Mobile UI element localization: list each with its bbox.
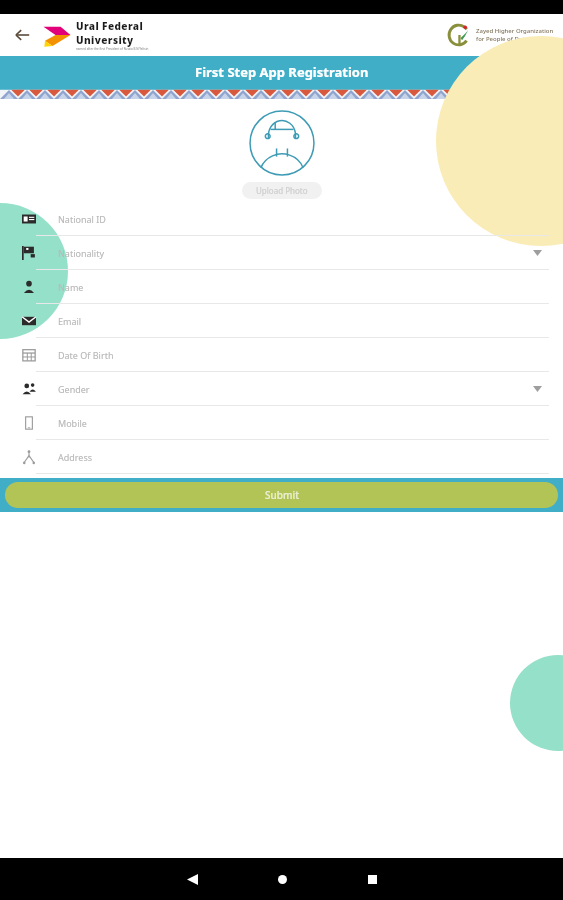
staticText: Ural Federal [76, 19, 144, 33]
staticText: Zayed Higher Organization [476, 27, 554, 35]
button[interactable]: Address [0, 440, 563, 474]
button[interactable]: Back [5, 18, 39, 52]
staticText: Nationality [58, 247, 104, 259]
button[interactable]: Nationality [0, 236, 563, 270]
staticText: Gender [58, 383, 90, 395]
staticText: First Step App Registration [195, 63, 369, 81]
staticText: Mobile [58, 417, 87, 429]
staticText: for People of Determination [476, 35, 557, 43]
staticText: Email [58, 315, 82, 327]
staticText: Submit [265, 488, 299, 502]
button[interactable]: Gender [0, 372, 563, 406]
button[interactable]: Back [169, 858, 215, 900]
button[interactable]: Upload Photo [242, 182, 322, 199]
staticText: University [76, 33, 134, 47]
staticText: Date Of Birth [58, 349, 114, 361]
button[interactable]: Email [0, 304, 563, 338]
button[interactable]: National ID [0, 202, 563, 236]
button[interactable]: Name [0, 270, 563, 304]
button[interactable]: Submit [5, 482, 558, 508]
staticText: National ID [58, 213, 106, 225]
button[interactable]: Profile photo [248, 109, 316, 177]
button[interactable]: Date Of Birth [0, 338, 563, 372]
button[interactable]: Recent apps [349, 858, 395, 900]
staticText: Name [58, 281, 84, 293]
button[interactable]: Home [259, 858, 305, 900]
staticText: Address [58, 451, 93, 463]
button[interactable]: Mobile [0, 406, 563, 440]
staticText: Upload Photo [256, 185, 308, 196]
staticText: named after the first President of Russi… [76, 47, 149, 51]
